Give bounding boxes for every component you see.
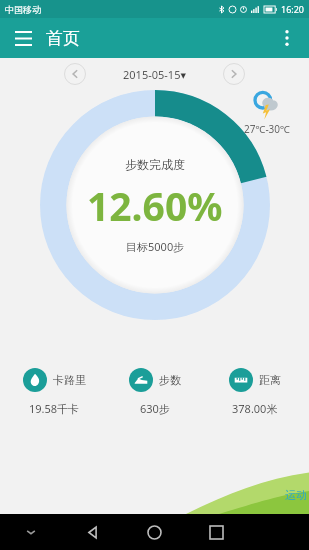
staticText: 19.58千卡 xyxy=(29,401,80,416)
button[interactable]: Menu xyxy=(8,23,38,53)
button[interactable]: 2015-05-15▾ xyxy=(123,67,186,82)
staticText: 16:20 xyxy=(281,3,305,15)
button[interactable]: More options xyxy=(271,22,303,54)
staticText: 步数 xyxy=(159,373,181,387)
staticText: 378.00米 xyxy=(232,401,278,416)
button[interactable]: 卡路里 xyxy=(4,368,105,416)
button[interactable]: 距离 xyxy=(205,368,305,416)
button[interactable]: 运动 xyxy=(285,488,307,502)
staticText: 步数完成度 xyxy=(125,157,185,172)
staticText: 目标5000步 xyxy=(126,239,185,254)
staticText: 630步 xyxy=(140,401,170,416)
button[interactable]: Hide xyxy=(0,514,61,550)
button[interactable]: Previous day xyxy=(62,61,88,87)
other: Weather xyxy=(252,90,282,120)
button[interactable]: Weather xyxy=(231,90,303,136)
staticText: 27℃-30℃ xyxy=(244,122,290,136)
staticText: 中国移动 xyxy=(5,4,41,15)
staticText: 首页 xyxy=(46,28,80,49)
button[interactable]: 步数 xyxy=(105,368,205,416)
staticText: 卡路里 xyxy=(53,373,86,387)
staticText: 距离 xyxy=(259,373,281,387)
button[interactable]: Home xyxy=(123,514,185,550)
button[interactable]: Back xyxy=(61,514,123,550)
staticText: 12.60% xyxy=(87,179,223,232)
button[interactable]: Recent apps xyxy=(185,514,247,550)
button[interactable]: Next day xyxy=(221,61,247,87)
